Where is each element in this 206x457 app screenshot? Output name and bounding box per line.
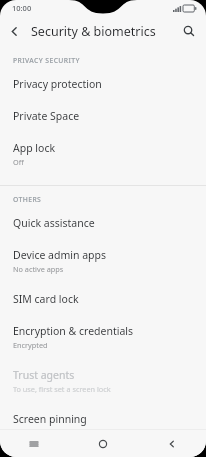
staticText: Screen pinning: [13, 412, 87, 426]
button[interactable]: Back: [0, 17, 28, 45]
button[interactable]: Encryption & credentials: [0, 315, 206, 359]
staticText: Trust agents: [13, 368, 75, 382]
button[interactable]: Search: [176, 18, 202, 44]
button[interactable]: Quick assistance: [0, 207, 206, 239]
staticText: Privacy protection: [13, 77, 102, 91]
staticText: OTHERS: [13, 195, 42, 204]
staticText: Quick assistance: [13, 216, 95, 230]
staticText: Encryption & credentials: [13, 324, 134, 338]
staticText: App lock: [13, 141, 56, 155]
button[interactable]: Private Space: [0, 100, 206, 132]
button[interactable]: Screen pinning: [0, 403, 206, 447]
button[interactable]: Trust agents: [0, 359, 206, 403]
staticText: Security & biometrics: [31, 23, 156, 40]
staticText: Encrypted: [13, 340, 48, 350]
button[interactable]: Back: [137, 430, 206, 457]
staticText: Off: [13, 157, 24, 167]
staticText: Private Space: [13, 109, 80, 123]
staticText: To use, first set a screen lock: [13, 384, 111, 394]
staticText: No active apps: [13, 264, 64, 274]
button[interactable]: Home: [68, 430, 137, 457]
staticText: PRIVACY SECURITY: [13, 56, 80, 65]
button[interactable]: SIM card lock: [0, 283, 206, 315]
button[interactable]: Device admin apps: [0, 239, 206, 283]
button[interactable]: Privacy protection: [0, 68, 206, 100]
staticText: Off: [13, 428, 24, 438]
staticText: 10:00: [12, 3, 32, 13]
staticText: Device admin apps: [13, 248, 107, 262]
staticText: SIM card lock: [13, 292, 79, 306]
button[interactable]: App lock: [0, 132, 206, 176]
button[interactable]: Recents: [0, 430, 68, 457]
